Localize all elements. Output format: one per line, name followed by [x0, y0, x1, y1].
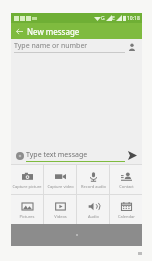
button[interactable]: Audio — [77, 195, 109, 224]
staticText: Record audio — [81, 184, 106, 189]
button[interactable]: Contact — [110, 165, 142, 194]
button[interactable]: Type name or number — [14, 41, 125, 53]
staticText: Contact — [119, 184, 134, 189]
button[interactable]: Add recipient from contacts — [125, 40, 139, 54]
staticText: Videos — [54, 214, 67, 219]
button[interactable]: Insert emoji — [13, 149, 26, 162]
button[interactable]: Record audio — [77, 165, 109, 194]
button[interactable]: Calendar — [110, 195, 142, 224]
button[interactable]: Capture video — [44, 165, 76, 194]
button[interactable]: Navigate up — [11, 23, 27, 39]
staticText: Capture video — [47, 184, 74, 189]
staticText: G — [101, 15, 105, 22]
button[interactable]: Capture picture — [11, 165, 43, 194]
staticText: Audio — [88, 214, 99, 219]
staticText: 10:18 — [127, 15, 140, 22]
button[interactable]: Type text message — [26, 150, 125, 162]
staticText: New message — [27, 26, 80, 37]
staticText: Pictures — [19, 214, 35, 219]
staticText: Capture picture — [12, 184, 42, 189]
button[interactable]: Pictures — [11, 195, 43, 224]
staticText: Type text message — [26, 150, 88, 160]
button[interactable]: Videos — [44, 195, 76, 224]
staticText: Type name or number — [14, 41, 88, 51]
staticText: E — [112, 15, 115, 22]
button[interactable]: Send — [125, 148, 140, 163]
staticText: Calendar — [118, 214, 135, 219]
